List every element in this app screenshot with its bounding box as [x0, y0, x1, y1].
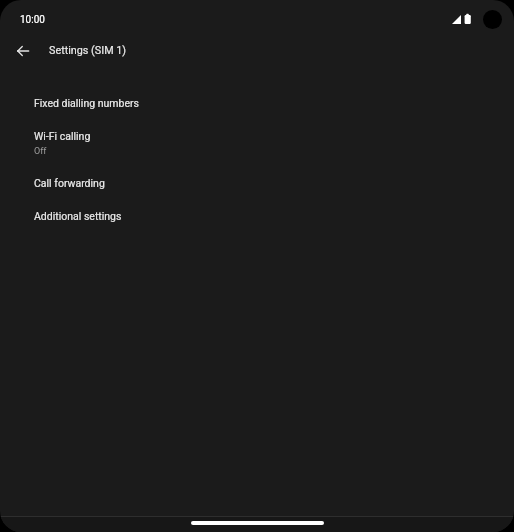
button[interactable]: Additional settings: [0, 204, 514, 237]
staticText: Settings (SIM 1): [49, 44, 127, 57]
button[interactable]: Fixed dialling numbers: [0, 91, 514, 124]
staticText: Off: [34, 146, 47, 157]
staticText: Wi-Fi calling: [34, 130, 91, 142]
staticText: Additional settings: [34, 210, 122, 222]
button[interactable]: Wi-Fi calling: [0, 124, 514, 170]
staticText: Call forwarding: [34, 177, 105, 189]
staticText: Fixed dialling numbers: [34, 97, 139, 109]
button[interactable]: Back: [10, 38, 35, 63]
button[interactable]: Call forwarding: [0, 171, 514, 204]
staticText: 10:00: [20, 14, 45, 26]
